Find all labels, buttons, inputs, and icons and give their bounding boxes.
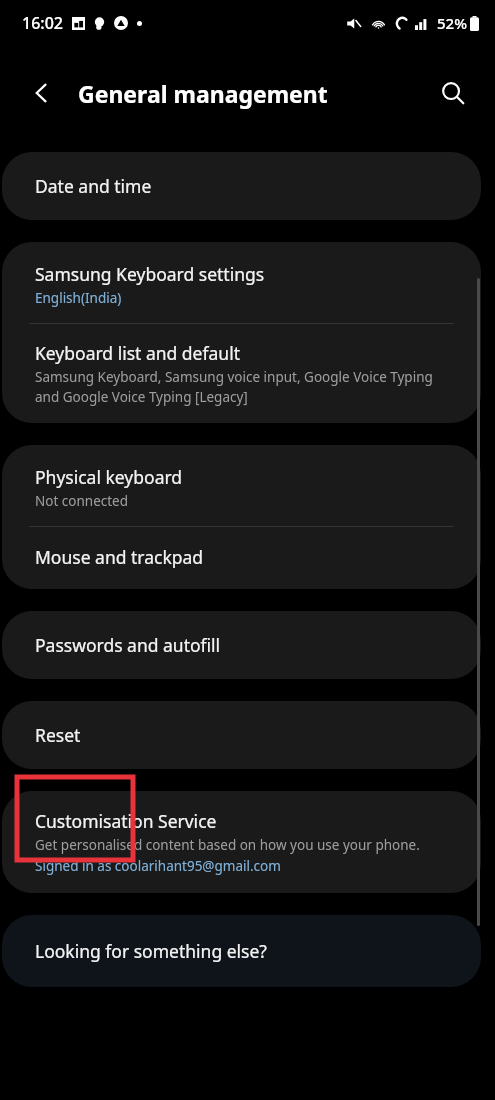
button[interactable]: Keyboard list and default [2,324,481,423]
button[interactable]: Back [22,73,62,113]
button[interactable]: Samsung Keyboard settings [2,242,481,323]
button[interactable]: Reset [2,701,481,769]
button[interactable]: Mouse and trackpad [2,527,481,589]
staticText: Samsung Keyboard, Samsung voice input, G… [35,368,455,406]
staticText: 52% [437,13,467,33]
staticText: Signed in as coolarihant95@gmail.com [35,857,281,875]
staticText: Reset [35,723,81,747]
staticText: Looking for something else? [35,939,267,963]
staticText: Mouse and trackpad [35,545,204,569]
button[interactable]: Looking for something else? [2,915,481,987]
button[interactable]: Search [431,71,475,115]
staticText: Date and time [35,174,152,198]
staticText: Get personalised content based on how yo… [35,836,420,854]
button[interactable]: Customisation Service [2,791,481,893]
staticText: Keyboard list and default [35,341,240,365]
staticText: Physical keyboard [35,465,183,489]
staticText: Not connected [35,492,129,510]
staticText: General management [78,78,328,109]
button[interactable]: Passwords and autofill [2,611,481,679]
staticText: Passwords and autofill [35,633,221,657]
staticText: Customisation Service [35,809,217,833]
button[interactable]: Physical keyboard [2,445,481,526]
staticText: 16:02 [22,12,63,34]
button[interactable]: Date and time [2,152,481,220]
staticText: English(India) [35,289,122,307]
staticText: Samsung Keyboard settings [35,262,265,286]
